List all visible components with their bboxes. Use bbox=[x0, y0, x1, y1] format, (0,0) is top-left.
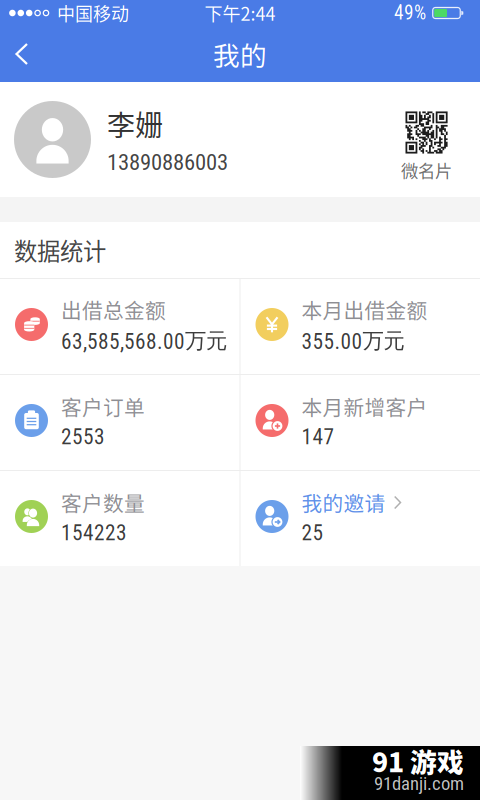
button[interactable]: 客户数量 bbox=[0, 471, 239, 566]
staticText: 63,585,568.00万元 bbox=[61, 327, 227, 354]
button[interactable]: 客户订单 bbox=[0, 375, 239, 470]
button[interactable]: 本月出借金额 bbox=[240, 279, 480, 374]
staticText: 本月出借金额 bbox=[301, 295, 427, 324]
staticText: 2553 bbox=[61, 424, 105, 449]
staticText: 数据统计 bbox=[14, 233, 106, 267]
button[interactable]: 本月新增客户 bbox=[240, 375, 480, 470]
staticText: 25 bbox=[301, 520, 323, 545]
staticText: 91danji.com bbox=[374, 773, 464, 794]
staticText: 355.00万元 bbox=[301, 327, 404, 354]
staticText: 我的邀请 bbox=[301, 487, 385, 517]
staticText: 出借总金额 bbox=[61, 295, 166, 324]
button[interactable]: 我的邀请 bbox=[240, 471, 480, 566]
staticText: 客户订单 bbox=[61, 391, 145, 421]
staticText: 李姗 bbox=[107, 103, 163, 144]
staticText: 微名片 bbox=[401, 157, 452, 183]
staticText: 91 游戏 bbox=[372, 741, 464, 780]
staticText: 下午2:44 bbox=[204, 0, 275, 26]
button[interactable]: 出借总金额 bbox=[0, 279, 239, 374]
staticText: 154223 bbox=[61, 520, 127, 545]
staticText: 49% bbox=[394, 2, 426, 24]
staticText: 中国移动 bbox=[57, 0, 129, 26]
staticText: 147 bbox=[301, 424, 334, 449]
staticText: 我的 bbox=[213, 35, 267, 73]
button[interactable]: 返回 bbox=[0, 30, 48, 78]
staticText: 客户数量 bbox=[61, 487, 145, 517]
staticText: 本月新增客户 bbox=[301, 391, 427, 421]
staticText: 13890886003 bbox=[107, 149, 228, 176]
button[interactable]: 微名片 bbox=[397, 90, 452, 189]
